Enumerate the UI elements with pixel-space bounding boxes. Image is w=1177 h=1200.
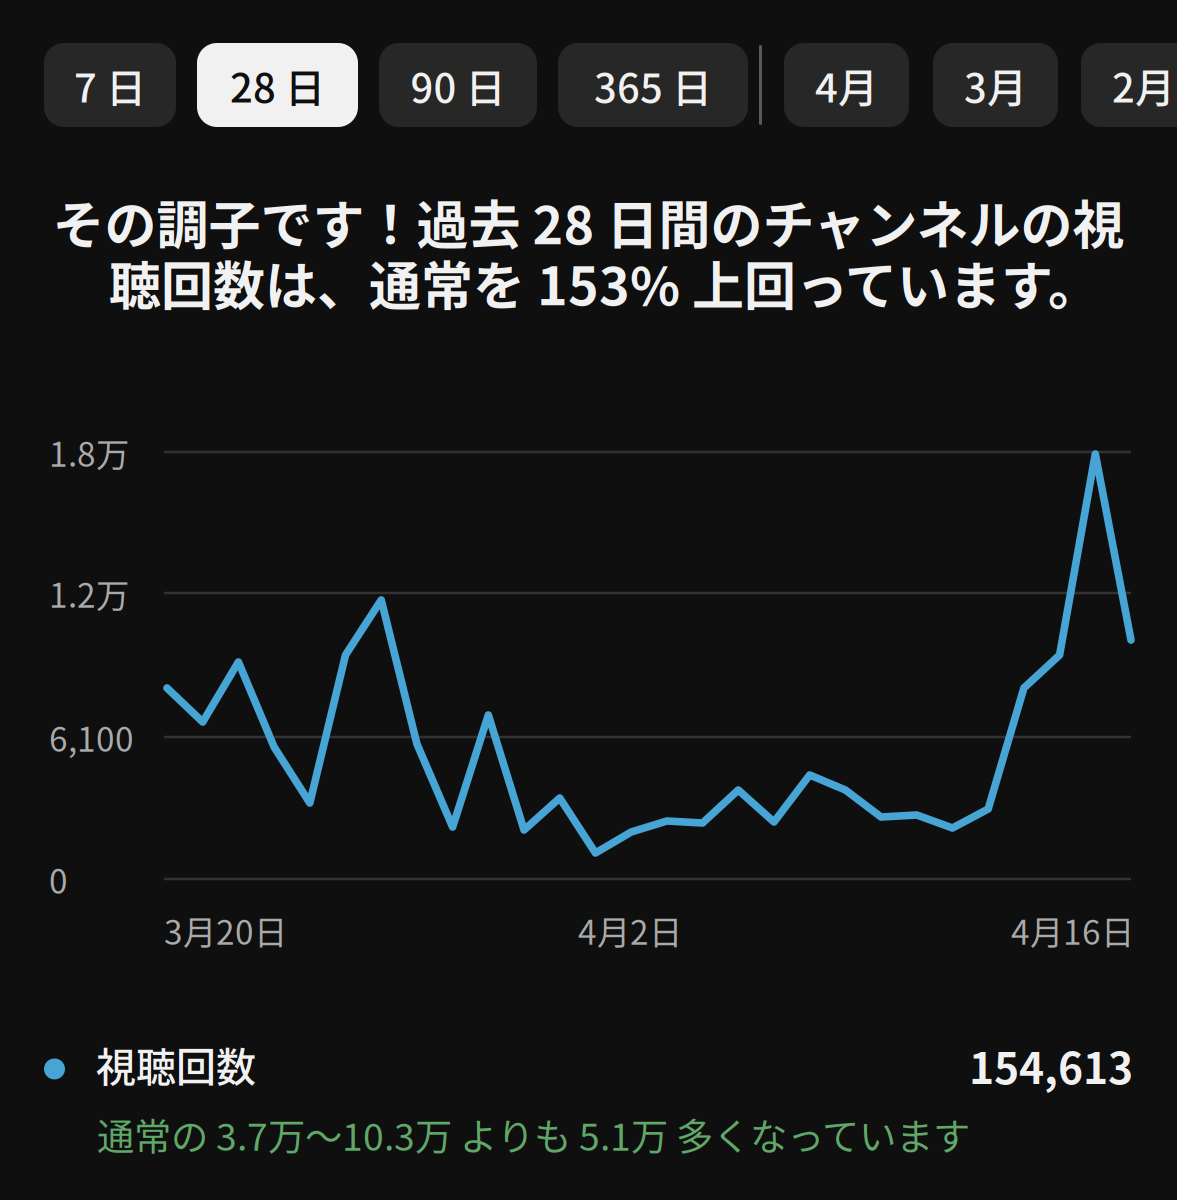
staticText: 3月20日 bbox=[164, 906, 287, 954]
button[interactable]: 90 日 bbox=[379, 43, 537, 127]
button[interactable]: 7 日 bbox=[44, 43, 176, 127]
button[interactable]: 3月 bbox=[933, 43, 1058, 127]
staticText: 154,613 bbox=[969, 1034, 1133, 1096]
staticText: 28 日 bbox=[230, 56, 325, 114]
button[interactable]: 365 日 bbox=[558, 43, 748, 127]
staticText: 2月 bbox=[1112, 56, 1175, 114]
staticText: 聴回数は、通常を 153% 上回っています。 bbox=[109, 245, 1100, 320]
staticText: 90 日 bbox=[410, 56, 505, 114]
staticText: 4月16日 bbox=[1011, 906, 1134, 954]
staticText: 通常の 3.7万〜10.3万 よりも 5.1万 多くなっています bbox=[97, 1107, 970, 1162]
button[interactable]: 28 日 bbox=[197, 43, 358, 127]
staticText: 6,100 bbox=[49, 713, 134, 761]
staticText: 視聴回数 bbox=[96, 1035, 256, 1093]
staticText: 7 日 bbox=[74, 56, 146, 114]
staticText: 1.2万 bbox=[49, 569, 129, 617]
staticText: 3月 bbox=[964, 56, 1027, 114]
staticText: 0 bbox=[49, 855, 68, 903]
button[interactable]: 4月 bbox=[784, 43, 909, 127]
staticText: その調子です！過去 28 日間のチャンネルの視 bbox=[52, 184, 1124, 259]
staticText: 4月 bbox=[815, 56, 878, 114]
button[interactable]: 2月 bbox=[1081, 43, 1177, 127]
button[interactable]: 視聴回数 bbox=[44, 1035, 1177, 1158]
staticText: 4月2日 bbox=[578, 906, 682, 954]
staticText: 1.8万 bbox=[49, 428, 129, 476]
staticText: 365 日 bbox=[594, 56, 712, 114]
